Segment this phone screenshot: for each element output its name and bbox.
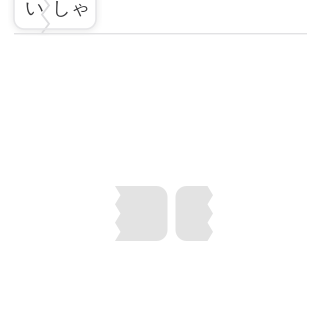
staticText: い: [25, 0, 44, 19]
staticText: しゃ: [52, 0, 90, 19]
button[interactable]: い: [14, 0, 96, 29]
